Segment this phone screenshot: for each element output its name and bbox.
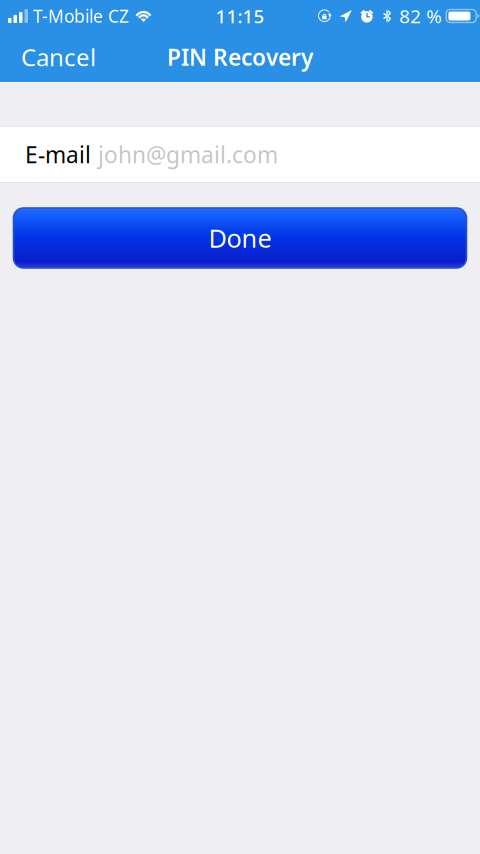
button[interactable]: E-mail xyxy=(0,126,480,183)
staticText: john@gmail.com xyxy=(98,139,278,169)
staticText: Done xyxy=(208,221,271,255)
button[interactable]: Cancel xyxy=(0,32,117,82)
staticText: E-mail xyxy=(25,139,91,169)
staticText: PIN Recovery xyxy=(167,42,313,72)
staticText: Cancel xyxy=(21,41,96,73)
staticText: 11:15 xyxy=(215,4,264,28)
button[interactable]: Done xyxy=(13,208,466,268)
staticText: T-Mobile CZ xyxy=(33,4,129,27)
staticText: 82 % xyxy=(399,4,442,28)
